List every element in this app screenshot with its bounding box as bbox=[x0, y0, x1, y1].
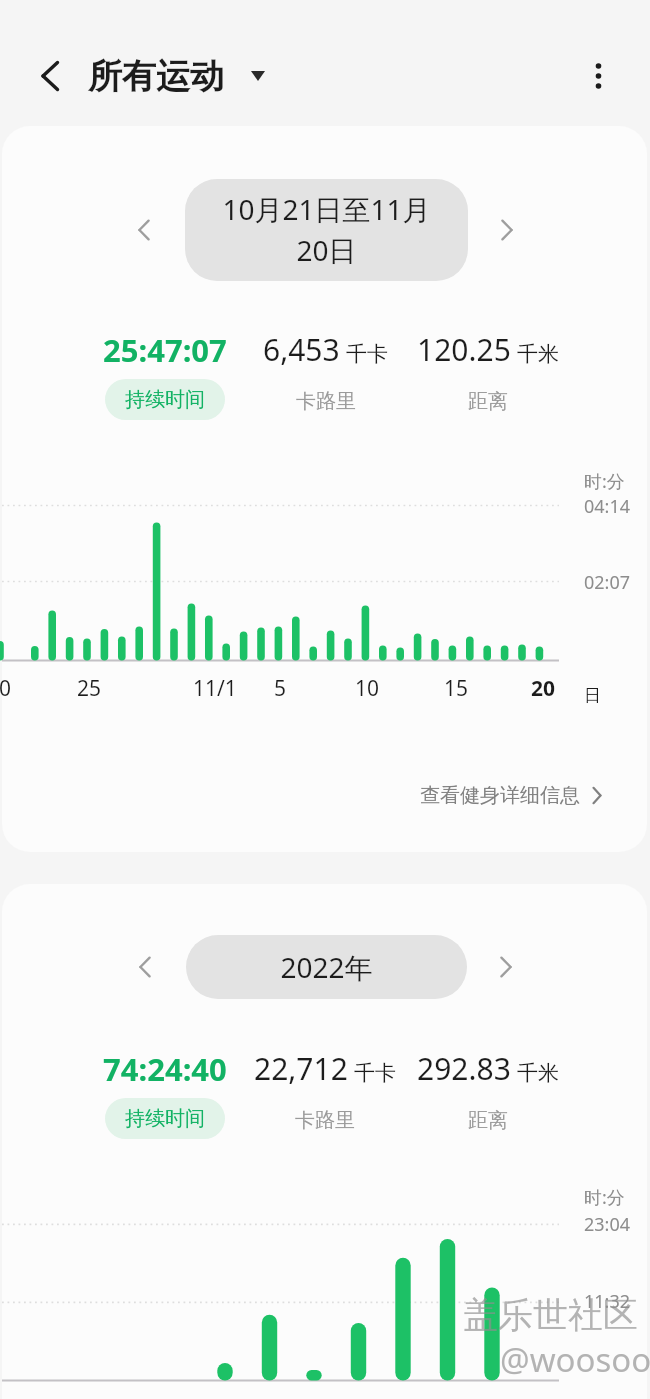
staticText: 25:47:07 bbox=[103, 329, 227, 371]
button[interactable]: 25:47:07 bbox=[78, 329, 252, 425]
button[interactable]: 120.25 bbox=[398, 329, 578, 425]
staticText: 22,712 bbox=[254, 1048, 348, 1089]
staticText: 时:分 bbox=[584, 469, 625, 494]
staticText: 所有运动 bbox=[88, 55, 224, 98]
staticText: 距离 bbox=[468, 389, 508, 414]
button[interactable]: 292.83 bbox=[398, 1048, 578, 1144]
staticText: 持续时间 bbox=[125, 1106, 205, 1131]
button[interactable]: Previous period bbox=[123, 945, 167, 989]
staticText: 11:32 bbox=[584, 1289, 631, 1314]
button[interactable]: Next period bbox=[484, 945, 528, 989]
staticText: 千卡 bbox=[346, 341, 388, 367]
staticText: 292.83 bbox=[417, 1048, 511, 1089]
staticText: 千米 bbox=[517, 1060, 559, 1086]
button[interactable]: 22,712 bbox=[235, 1048, 415, 1144]
staticText: 23:04 bbox=[584, 1212, 631, 1237]
staticText: 查看健身详细信息 bbox=[420, 783, 580, 808]
button[interactable]: 10月21日至11月 20日 bbox=[185, 179, 468, 281]
staticText: 25 bbox=[77, 674, 102, 703]
staticText: 时:分 bbox=[584, 1185, 625, 1210]
staticText: 千米 bbox=[517, 341, 559, 367]
button[interactable]: 所有运动 bbox=[88, 44, 265, 108]
button[interactable]: More options bbox=[570, 48, 626, 104]
staticText: 5 bbox=[274, 674, 287, 703]
staticText: 6,453 bbox=[263, 329, 340, 370]
staticText: 10 bbox=[355, 674, 380, 703]
button[interactable]: Next period bbox=[485, 208, 529, 252]
button[interactable]: Back bbox=[21, 48, 77, 104]
staticText: 15 bbox=[444, 674, 469, 703]
staticText: 盖乐世社区 bbox=[463, 1293, 638, 1337]
staticText: 20 bbox=[0, 674, 12, 703]
staticText: 卡路里 bbox=[295, 1108, 355, 1133]
button[interactable]: 6,453 bbox=[235, 329, 415, 425]
button[interactable]: 2022年 bbox=[186, 935, 467, 999]
button[interactable]: 查看健身详细信息 bbox=[412, 769, 613, 821]
staticText: @woosoo bbox=[500, 1337, 650, 1382]
staticText: 04:14 bbox=[584, 494, 631, 519]
staticText: 日 bbox=[584, 685, 601, 706]
staticText: 20 bbox=[531, 674, 556, 703]
staticText: 卡路里 bbox=[296, 389, 356, 414]
staticText: 120.25 bbox=[417, 329, 511, 370]
staticText: 2022年 bbox=[280, 948, 373, 986]
button[interactable]: 74:24:40 bbox=[78, 1048, 252, 1144]
staticText: 持续时间 bbox=[125, 387, 205, 412]
staticText: 11/1 bbox=[193, 674, 237, 703]
staticText: 千卡 bbox=[354, 1060, 396, 1086]
staticText: 距离 bbox=[468, 1108, 508, 1133]
staticText: 74:24:40 bbox=[103, 1048, 227, 1090]
staticText: 02:07 bbox=[584, 570, 631, 595]
button[interactable]: Previous period bbox=[122, 208, 166, 252]
staticText: 10月21日至11月 20日 bbox=[222, 190, 431, 270]
